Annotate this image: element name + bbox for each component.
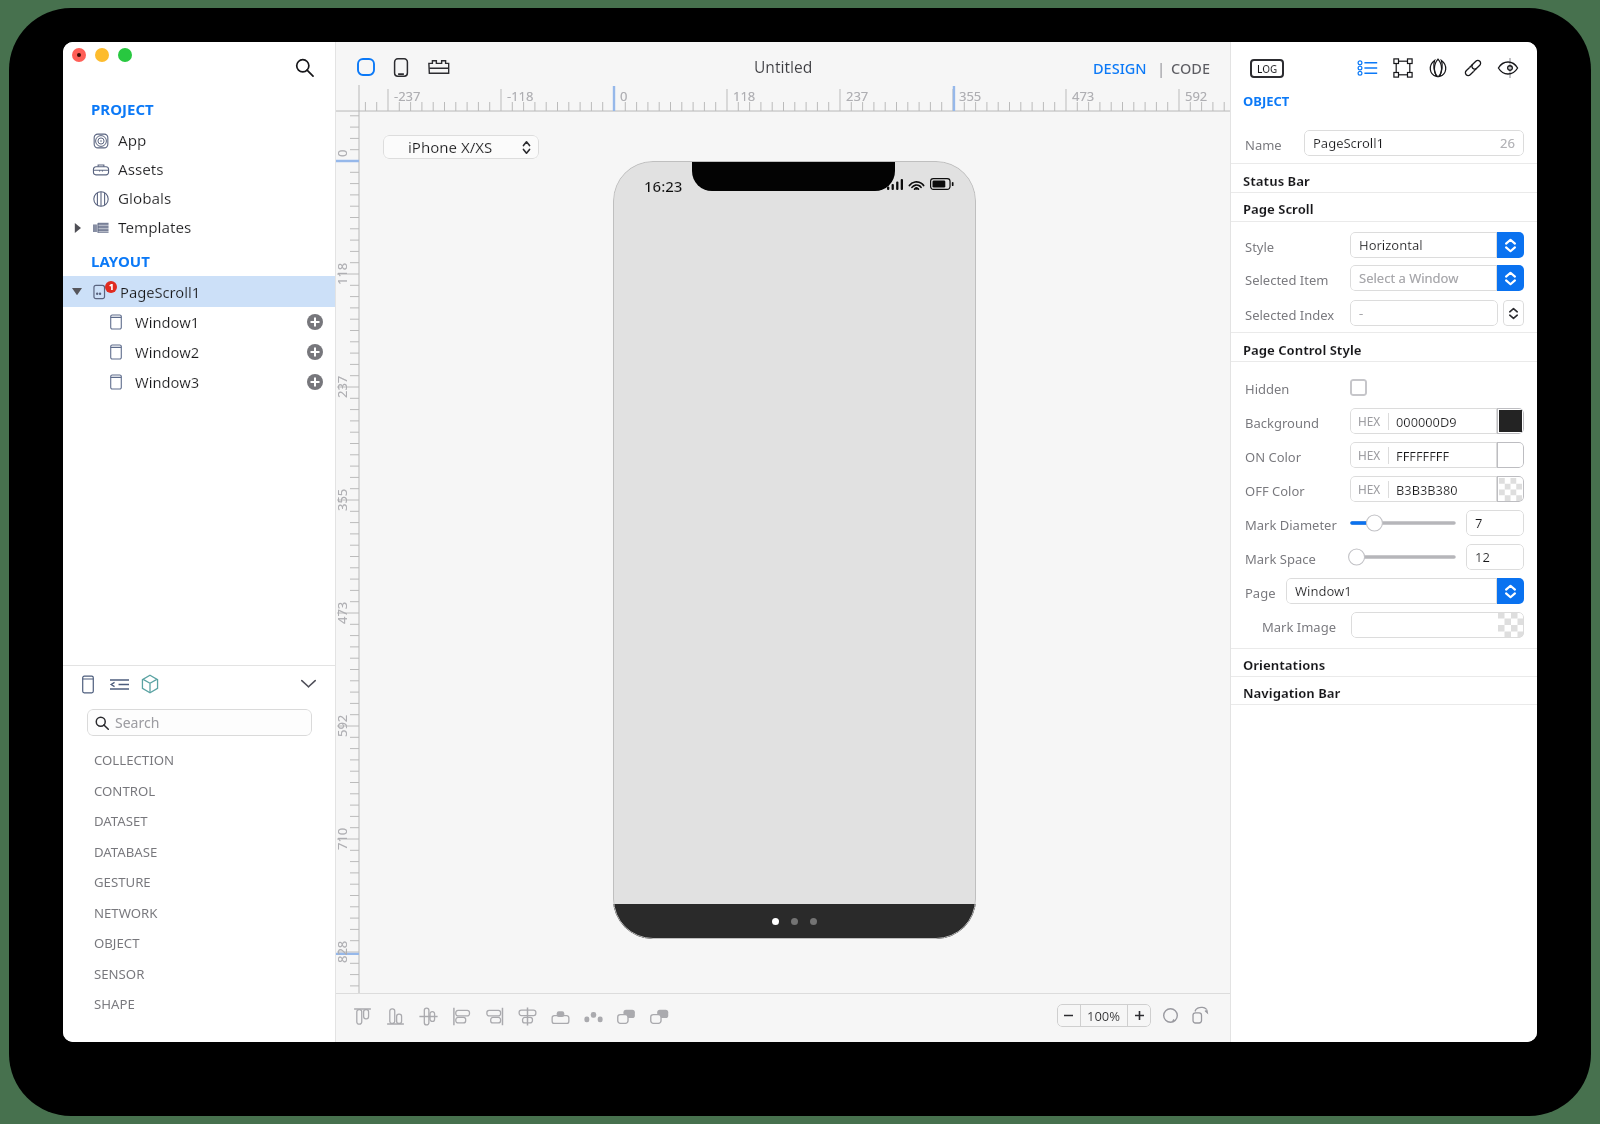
button[interactable]: Preview	[1495, 55, 1521, 81]
button[interactable]: Rotate device	[1187, 1002, 1213, 1028]
staticText: -237	[394, 87, 421, 105]
button[interactable]: Colour swatch	[1497, 408, 1524, 434]
button[interactable]: Bring forward	[610, 998, 643, 1034]
button[interactable]: Window control	[118, 48, 132, 62]
button[interactable]: Mark image	[1351, 612, 1524, 638]
button[interactable]: Align horizontal centre	[511, 998, 544, 1034]
button[interactable]: Bindings	[1460, 55, 1486, 81]
button[interactable]: 1	[63, 276, 335, 307]
button[interactable]: NETWORK	[94, 898, 335, 928]
staticText: Window1	[135, 312, 200, 332]
button[interactable]: Colour swatch	[1497, 442, 1524, 468]
staticText: Orientations	[1243, 656, 1326, 674]
button[interactable]: Horizontal	[1350, 232, 1524, 258]
staticText: Window3	[135, 372, 200, 392]
button[interactable]: Collapse library	[295, 670, 321, 696]
staticText: Window2	[135, 342, 200, 362]
button[interactable]: SHAPE	[94, 989, 335, 1019]
button[interactable]: OBJECT	[94, 928, 335, 958]
button[interactable]: LOG	[1250, 59, 1284, 78]
button[interactable]: CONTROL	[94, 776, 335, 806]
button[interactable]: CODE	[1169, 58, 1212, 78]
button[interactable]: Appearance	[1425, 55, 1451, 81]
button[interactable]: Window1	[1286, 578, 1524, 604]
button[interactable]: 7	[1466, 510, 1524, 536]
button[interactable]: Align left	[445, 998, 478, 1034]
staticText: Select a Window	[1359, 269, 1459, 287]
staticText: -118	[507, 87, 534, 105]
button[interactable]: Globals	[63, 184, 335, 213]
button[interactable]: Fit to screen	[1157, 1002, 1183, 1028]
staticText: 118	[733, 87, 756, 105]
button[interactable]: Components tool	[424, 52, 454, 82]
staticText: 1	[109, 281, 114, 293]
button[interactable]: Index stepper	[1503, 300, 1524, 326]
staticText: HEX	[1358, 481, 1381, 497]
staticText: SENSOR	[94, 965, 145, 983]
staticText: PageScroll1	[1313, 134, 1384, 152]
button[interactable]: Add Window2	[304, 341, 326, 363]
button[interactable]: Window3	[63, 367, 335, 397]
staticText: Globals	[118, 188, 172, 209]
button[interactable]: Controls library	[105, 670, 133, 698]
staticText: 355	[333, 488, 351, 511]
staticText: CODE	[1171, 58, 1210, 78]
button[interactable]: Objects library	[136, 670, 164, 698]
button[interactable]: DATASET	[94, 806, 335, 836]
staticText: Untitled	[754, 56, 813, 77]
button[interactable]: Layout frame	[1390, 55, 1416, 81]
button[interactable]: Distribute	[544, 998, 577, 1034]
button[interactable]: Search	[87, 709, 312, 736]
button[interactable]: Search	[291, 54, 317, 80]
button[interactable]: HEX	[1350, 408, 1497, 434]
staticText: 7	[1475, 514, 1483, 532]
button[interactable]: Window control	[95, 48, 109, 62]
button[interactable]: Hidden checkbox	[1350, 379, 1367, 396]
button[interactable]: Select a Window	[1350, 265, 1524, 291]
button[interactable]: Frame tool	[351, 52, 381, 82]
button[interactable]: DESIGN	[1091, 58, 1149, 78]
staticText: Window1	[1295, 582, 1352, 600]
button[interactable]: Assets	[63, 155, 335, 184]
button[interactable]: Align vertical centre	[412, 998, 445, 1034]
button[interactable]: -	[1350, 300, 1498, 326]
button[interactable]: Colour swatch	[1497, 476, 1524, 502]
button[interactable]: PageScroll1	[1304, 130, 1524, 156]
button[interactable]: App	[63, 126, 335, 155]
button[interactable]: HEX	[1350, 442, 1497, 468]
button[interactable]: Window2	[63, 337, 335, 367]
button[interactable]: iPhone X/XS	[383, 135, 539, 159]
button[interactable]: Zoom out	[1057, 1004, 1080, 1027]
button[interactable]: 12	[1466, 544, 1524, 570]
staticText: Page Scroll	[1243, 200, 1314, 218]
button[interactable]: Device tool	[386, 52, 416, 82]
staticText: HEX	[1358, 447, 1381, 463]
button[interactable]: Window1	[63, 307, 335, 337]
button[interactable]: Distribute evenly	[577, 998, 610, 1034]
button[interactable]: Windows library	[74, 670, 102, 698]
staticText: Selected Index	[1245, 306, 1335, 324]
staticText: Horizontal	[1359, 236, 1423, 254]
staticText: 473	[333, 601, 351, 624]
button[interactable]: SENSOR	[94, 959, 335, 989]
button[interactable]: Zoom in	[1128, 1004, 1151, 1027]
button[interactable]: COLLECTION	[94, 745, 335, 775]
button[interactable]: Align right	[478, 998, 511, 1034]
button[interactable]: Slider	[1350, 544, 1456, 570]
staticText: PROJECT	[91, 99, 154, 119]
button[interactable]: Align top	[346, 998, 379, 1034]
staticText: 592	[1185, 87, 1208, 105]
button[interactable]: GESTURE	[94, 867, 335, 897]
button[interactable]: Slider	[1350, 510, 1456, 536]
button[interactable]: Attributes	[1355, 55, 1381, 81]
button[interactable]: Templates	[63, 213, 335, 242]
button[interactable]: Add Window1	[304, 311, 326, 333]
button[interactable]: HEX	[1350, 476, 1497, 502]
button[interactable]: Align bottom	[379, 998, 412, 1034]
button[interactable]: Add Window3	[304, 371, 326, 393]
button[interactable]: Window control	[72, 48, 86, 62]
button[interactable]: Send backward	[643, 998, 676, 1034]
button[interactable]: DATABASE	[94, 837, 335, 867]
staticText: Page Control Style	[1243, 341, 1362, 359]
staticText: 473	[1072, 87, 1095, 105]
